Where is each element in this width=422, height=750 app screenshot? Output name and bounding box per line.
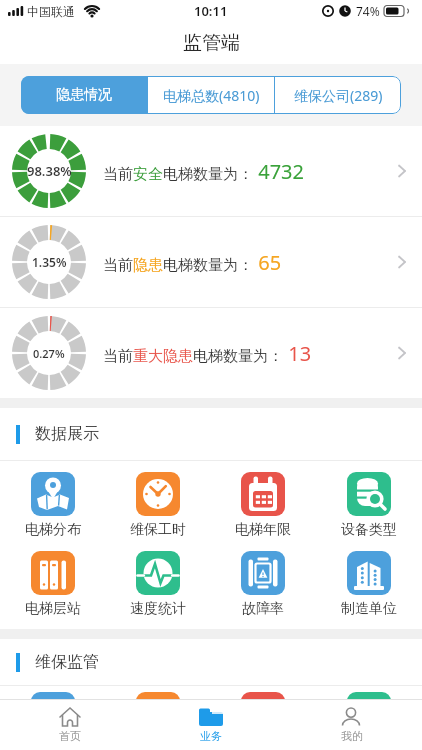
staticText: 首页 [59, 729, 81, 743]
staticText: 当前重大隐患电梯数量为： 13 [103, 340, 397, 367]
button[interactable] [31, 692, 75, 736]
button[interactable]: 维保工时 [105, 461, 210, 551]
button[interactable]: 首页 [0, 700, 140, 750]
button[interactable]: 制造单位 [316, 551, 422, 629]
button[interactable]: 1.35% [0, 217, 422, 307]
staticText: 98.38% [27, 162, 72, 180]
button[interactable]: 维保公司(289) [275, 76, 401, 114]
button[interactable]: 98.38% [0, 126, 422, 216]
button[interactable]: 隐患情况 [21, 76, 147, 114]
staticText: 当前隐患电梯数量为： 65 [103, 249, 397, 276]
staticText: 电梯分布 [25, 521, 81, 539]
staticText: 维保监管 [35, 652, 99, 672]
staticText: 速度统计 [130, 600, 186, 618]
staticText: 我的 [341, 729, 363, 743]
button[interactable]: 速度统计 [105, 551, 210, 629]
staticText: 业务 [200, 729, 222, 743]
button[interactable]: 电梯分布 [0, 461, 105, 551]
staticText: 监管端 [183, 31, 240, 55]
button[interactable] [241, 692, 285, 736]
staticText: 10:11 [194, 2, 228, 20]
button[interactable]: 电梯年限 [210, 461, 316, 551]
staticText: 1.35% [32, 254, 67, 270]
button[interactable]: 0.27% [0, 308, 422, 398]
button[interactable]: 我的 [281, 700, 422, 750]
staticText: 电梯年限 [235, 521, 291, 539]
button[interactable]: 业务 [140, 700, 281, 750]
staticText: 隐患情况 [56, 86, 112, 104]
button[interactable]: 电梯总数(4810) [148, 76, 274, 114]
button[interactable]: 电梯层站 [0, 551, 105, 629]
staticText: 维保公司(289) [294, 86, 383, 105]
staticText: 电梯总数(4810) [163, 86, 260, 105]
staticText: 74% [356, 3, 380, 19]
staticText: 电梯层站 [25, 600, 81, 618]
staticText: 制造单位 [341, 600, 397, 618]
staticText: 维保工时 [130, 521, 186, 539]
staticText: 数据展示 [35, 424, 99, 444]
button[interactable] [347, 692, 391, 736]
staticText: 中国联通 [27, 4, 75, 19]
staticText: 故障率 [242, 600, 284, 618]
staticText: 设备类型 [341, 521, 397, 539]
button[interactable]: 设备类型 [316, 461, 422, 551]
staticText: 0.27% [33, 346, 65, 361]
button[interactable] [136, 692, 180, 736]
button[interactable]: 故障率 [210, 551, 316, 629]
staticText: 当前安全电梯数量为： 4732 [103, 158, 397, 185]
